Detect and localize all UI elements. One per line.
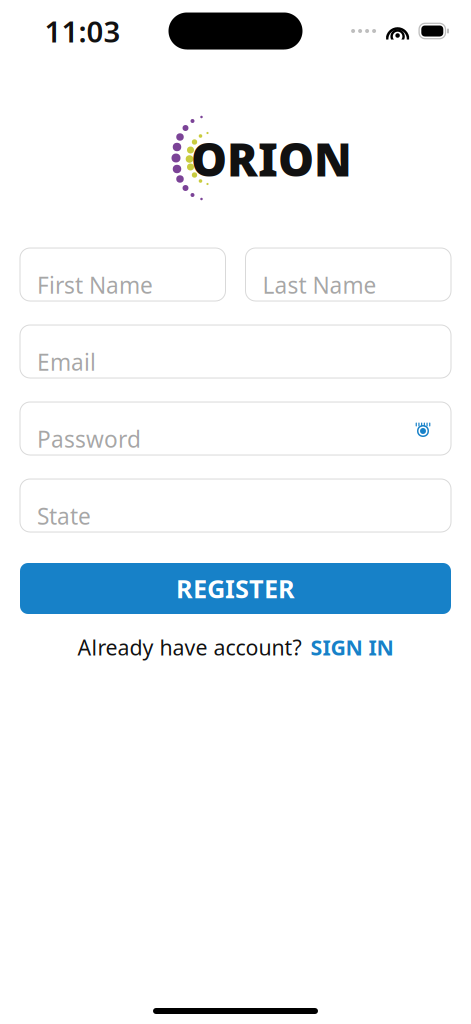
button[interactable]: First Name: [20, 248, 225, 301]
staticText: First Name: [37, 270, 153, 300]
staticText: SIGN IN: [310, 633, 393, 661]
staticText: 11:03: [44, 11, 120, 50]
button[interactable]: REGISTER: [20, 563, 451, 614]
button[interactable]: State: [20, 479, 451, 532]
button[interactable]: Password: [20, 402, 451, 455]
staticText: State: [37, 501, 91, 531]
button[interactable]: Last Name: [245, 248, 451, 301]
button[interactable]: SIGN IN: [310, 633, 393, 661]
staticText: ORION: [191, 129, 352, 189]
staticText: Email: [37, 347, 96, 377]
staticText: Already have account?: [77, 633, 301, 661]
staticText: Last Name: [262, 270, 376, 300]
staticText: Password: [37, 424, 141, 454]
button[interactable]: Email: [20, 325, 451, 378]
staticText: REGISTER: [176, 572, 295, 605]
